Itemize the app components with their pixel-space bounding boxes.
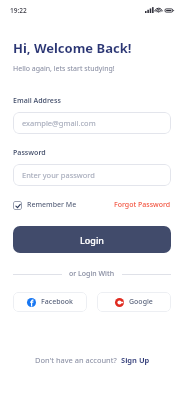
button[interactable]: Sign Up <box>121 355 150 365</box>
staticText: Hello again, lets start studying! <box>13 64 115 74</box>
staticText: Sign Up <box>121 355 150 365</box>
button[interactable]: Forgot Password <box>114 200 171 210</box>
staticText: example@gmail.com <box>22 118 96 128</box>
button[interactable]: Enter your password <box>13 164 171 186</box>
staticText: Google <box>129 297 153 307</box>
staticText: Enter your password <box>22 170 95 180</box>
staticText: Don't have an account? <box>35 355 117 365</box>
button[interactable]: Facebook <box>13 292 87 312</box>
staticText: Email Address <box>13 96 61 106</box>
staticText: Hi, Welcome Back! <box>13 39 132 57</box>
button[interactable]: Google <box>97 292 171 312</box>
button[interactable]: Remember Me <box>13 200 77 210</box>
staticText: Login <box>80 234 104 246</box>
staticText: or Login With <box>69 269 115 279</box>
staticText: Forgot Password <box>114 200 171 210</box>
staticText: 19:22 <box>10 6 27 15</box>
staticText: Facebook <box>41 297 73 307</box>
staticText: Password <box>13 148 46 158</box>
staticText: Remember Me <box>27 200 77 210</box>
button[interactable]: example@gmail.com <box>13 112 171 134</box>
button[interactable]: Login <box>13 226 171 253</box>
